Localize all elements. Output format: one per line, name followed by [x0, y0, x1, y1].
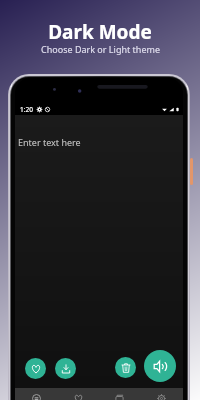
staticText: 1:20 [20, 105, 33, 114]
button[interactable]: Volume [144, 350, 176, 382]
staticText: Dark Mode [48, 19, 152, 45]
button[interactable]: Favorite [25, 358, 46, 379]
staticText: Enter text here [18, 136, 81, 148]
staticText: Choose Dark or Light theme [41, 43, 160, 55]
button[interactable]: Delete [115, 357, 136, 378]
button[interactable]: Download [55, 358, 76, 379]
button[interactable]: Settings [141, 388, 182, 400]
button[interactable]: Favorites [58, 388, 99, 400]
button[interactable]: Home [16, 388, 57, 400]
button[interactable]: Saved [99, 388, 140, 400]
